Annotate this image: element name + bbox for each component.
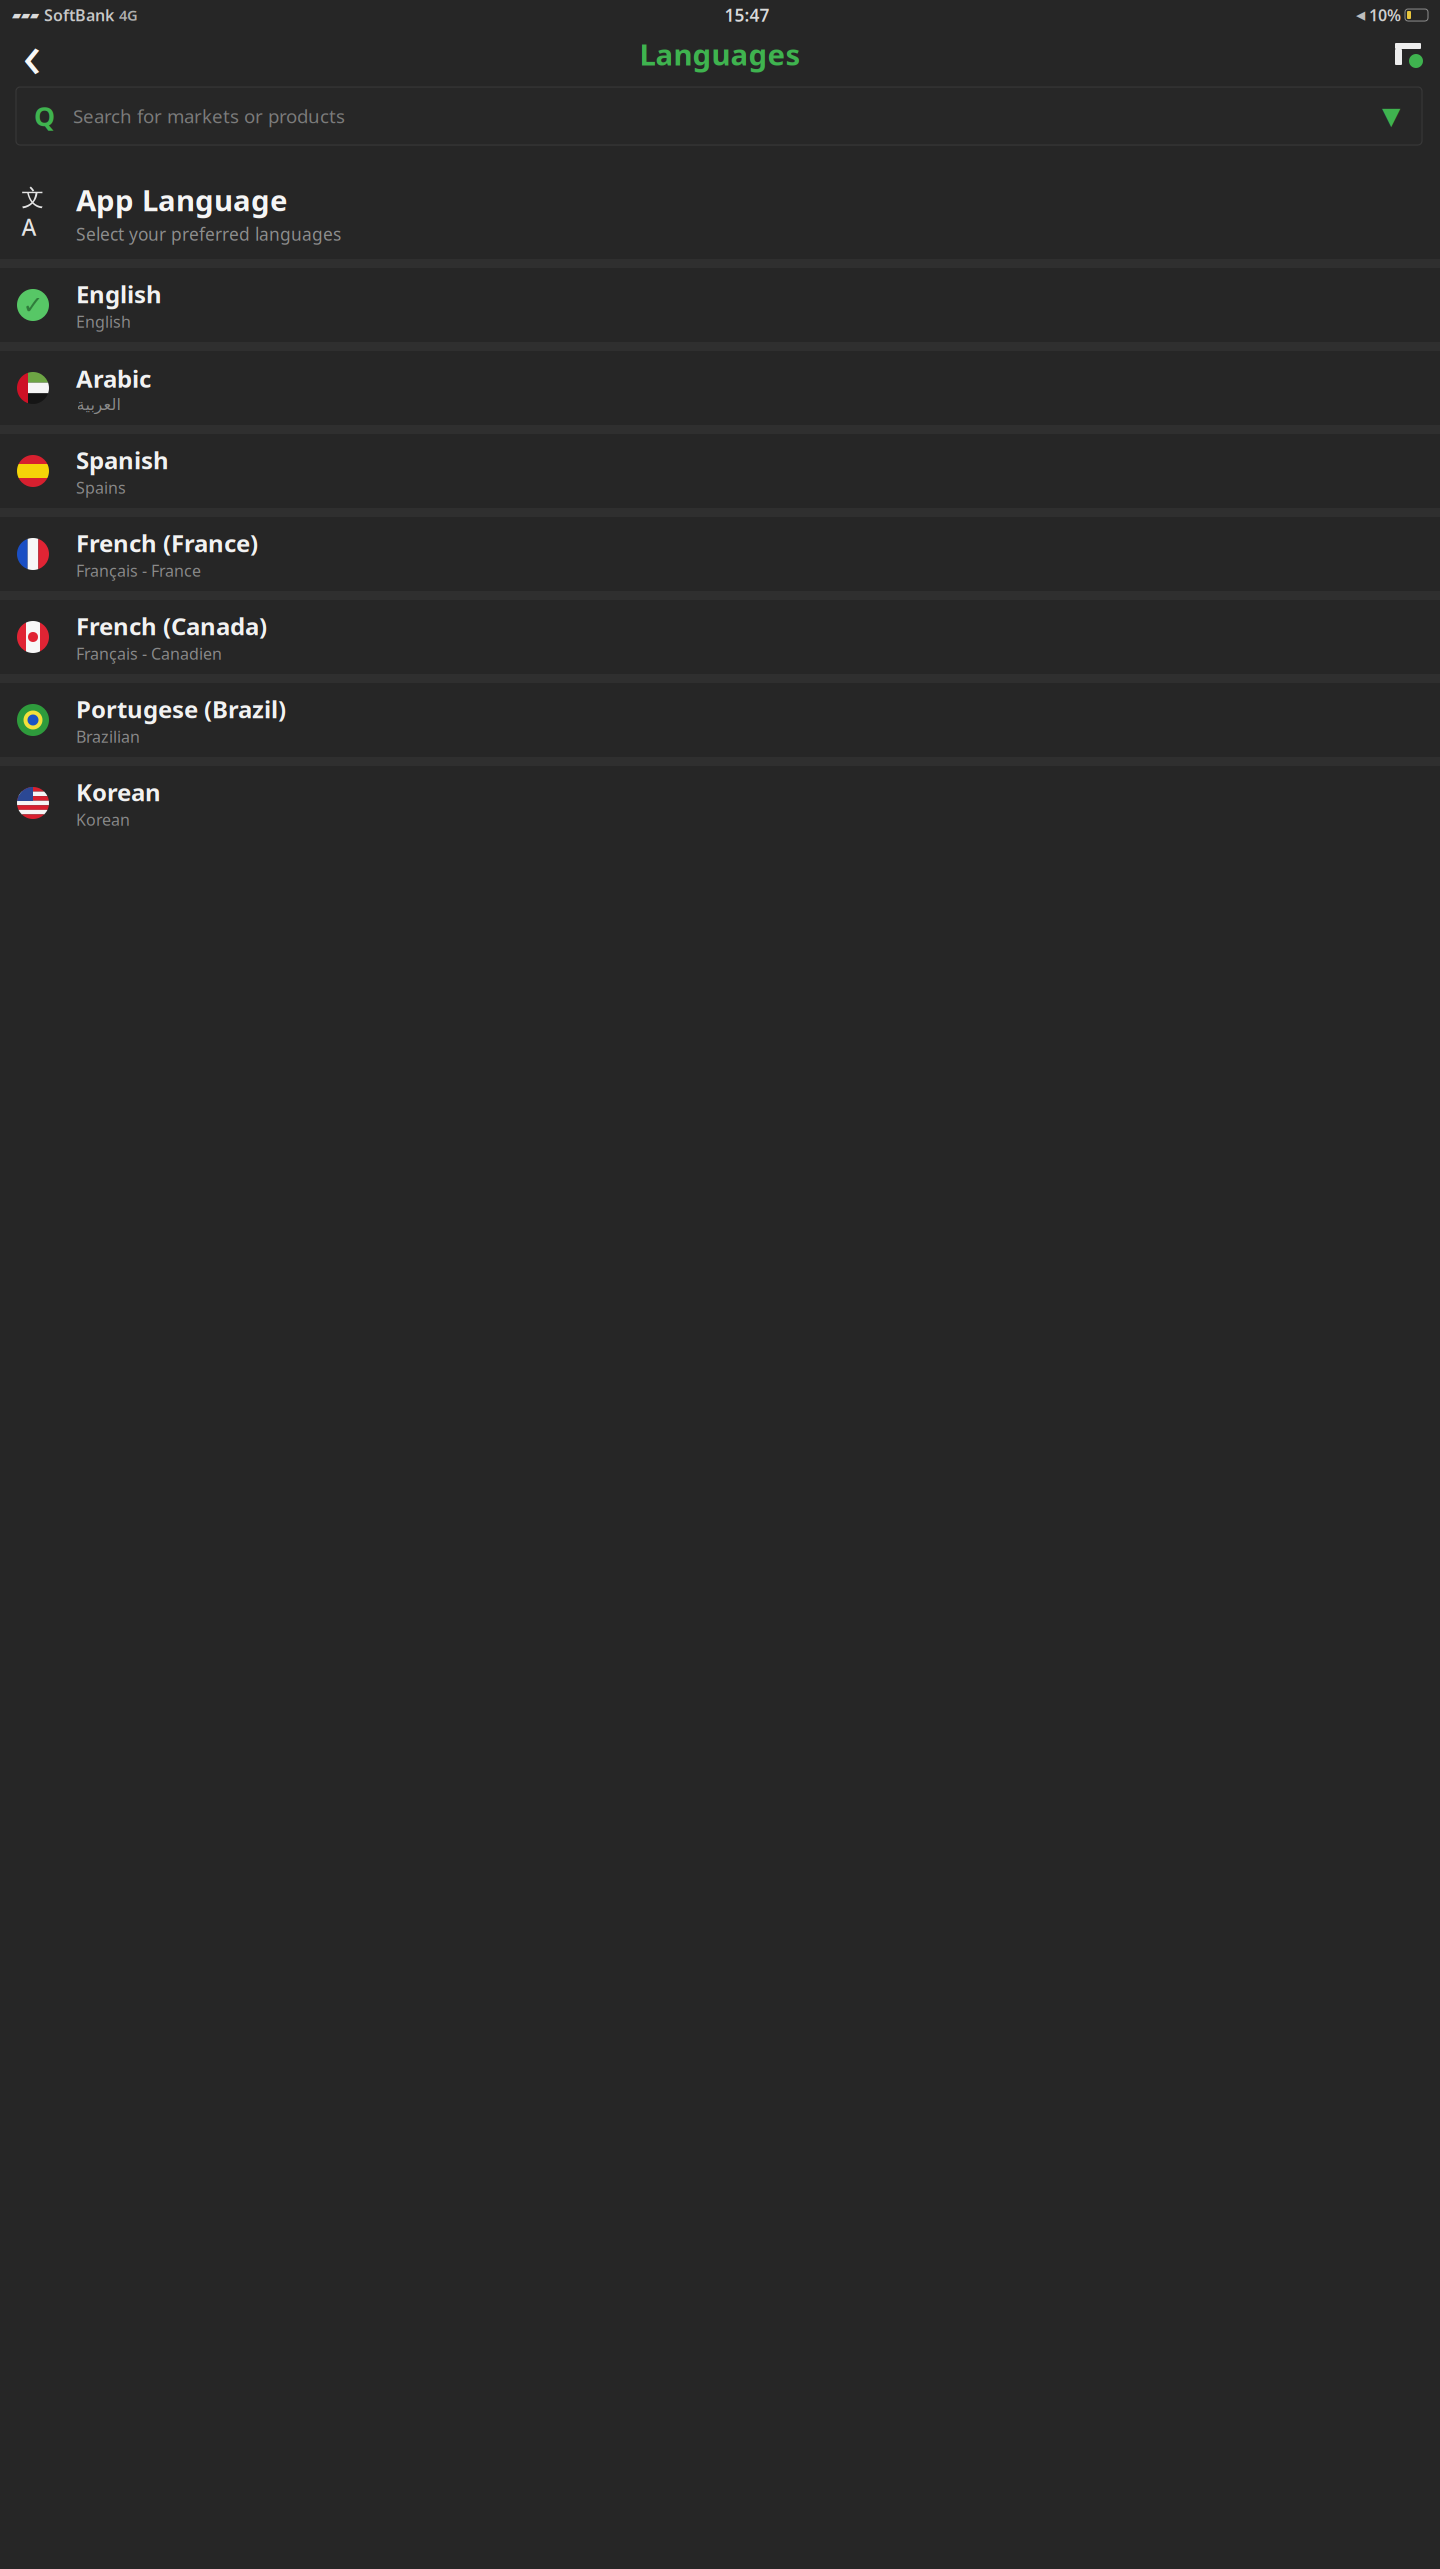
staticText: ✓ <box>22 291 43 319</box>
button[interactable]: Back <box>0 27 64 81</box>
staticText: ▼ <box>1382 102 1400 130</box>
button[interactable]: Q <box>16 87 1422 145</box>
staticText: Korean <box>76 809 130 830</box>
staticText: 15:47 <box>724 3 769 26</box>
button[interactable]: ✓ <box>0 268 1440 342</box>
staticText: Languages <box>639 34 800 73</box>
staticText: 文A <box>21 184 44 242</box>
staticText: Français - Canadien <box>76 643 222 664</box>
button[interactable]: Portugese (Brazil) <box>0 683 1440 757</box>
staticText: Spanish <box>76 444 169 476</box>
staticText: French (France) <box>76 527 258 559</box>
staticText: Français - France <box>76 560 201 581</box>
staticText: Search for markets or products <box>73 104 345 128</box>
staticText: English <box>76 278 162 310</box>
staticText: ‹ <box>22 13 41 95</box>
staticText: App Language <box>76 180 288 219</box>
staticText: 10% <box>1369 4 1401 26</box>
staticText: French (Canada) <box>76 610 267 642</box>
staticText: Q <box>34 98 55 134</box>
staticText: 4G <box>119 5 138 25</box>
staticText: Spains <box>76 477 126 498</box>
button[interactable]: French (France) <box>0 517 1440 591</box>
button[interactable]: Korean <box>0 766 1440 840</box>
staticText: Select your preferred languages <box>76 222 341 245</box>
staticText: Arabic <box>76 362 151 394</box>
staticText: العربية <box>76 395 120 414</box>
staticText: Portugese (Brazil) <box>76 693 286 725</box>
button[interactable]: Arabic <box>0 351 1440 425</box>
staticText: SoftBank <box>44 4 114 26</box>
staticText: Brazilian <box>76 726 140 747</box>
staticText: English <box>76 311 131 332</box>
staticText: ▰▰▰ <box>12 8 39 22</box>
button[interactable]: Cart <box>1376 27 1440 81</box>
button[interactable]: Spanish <box>0 434 1440 508</box>
button[interactable]: 文A <box>0 167 1440 259</box>
staticText: ◀ <box>1356 8 1365 22</box>
staticText: Korean <box>76 776 161 808</box>
button[interactable]: French (Canada) <box>0 600 1440 674</box>
